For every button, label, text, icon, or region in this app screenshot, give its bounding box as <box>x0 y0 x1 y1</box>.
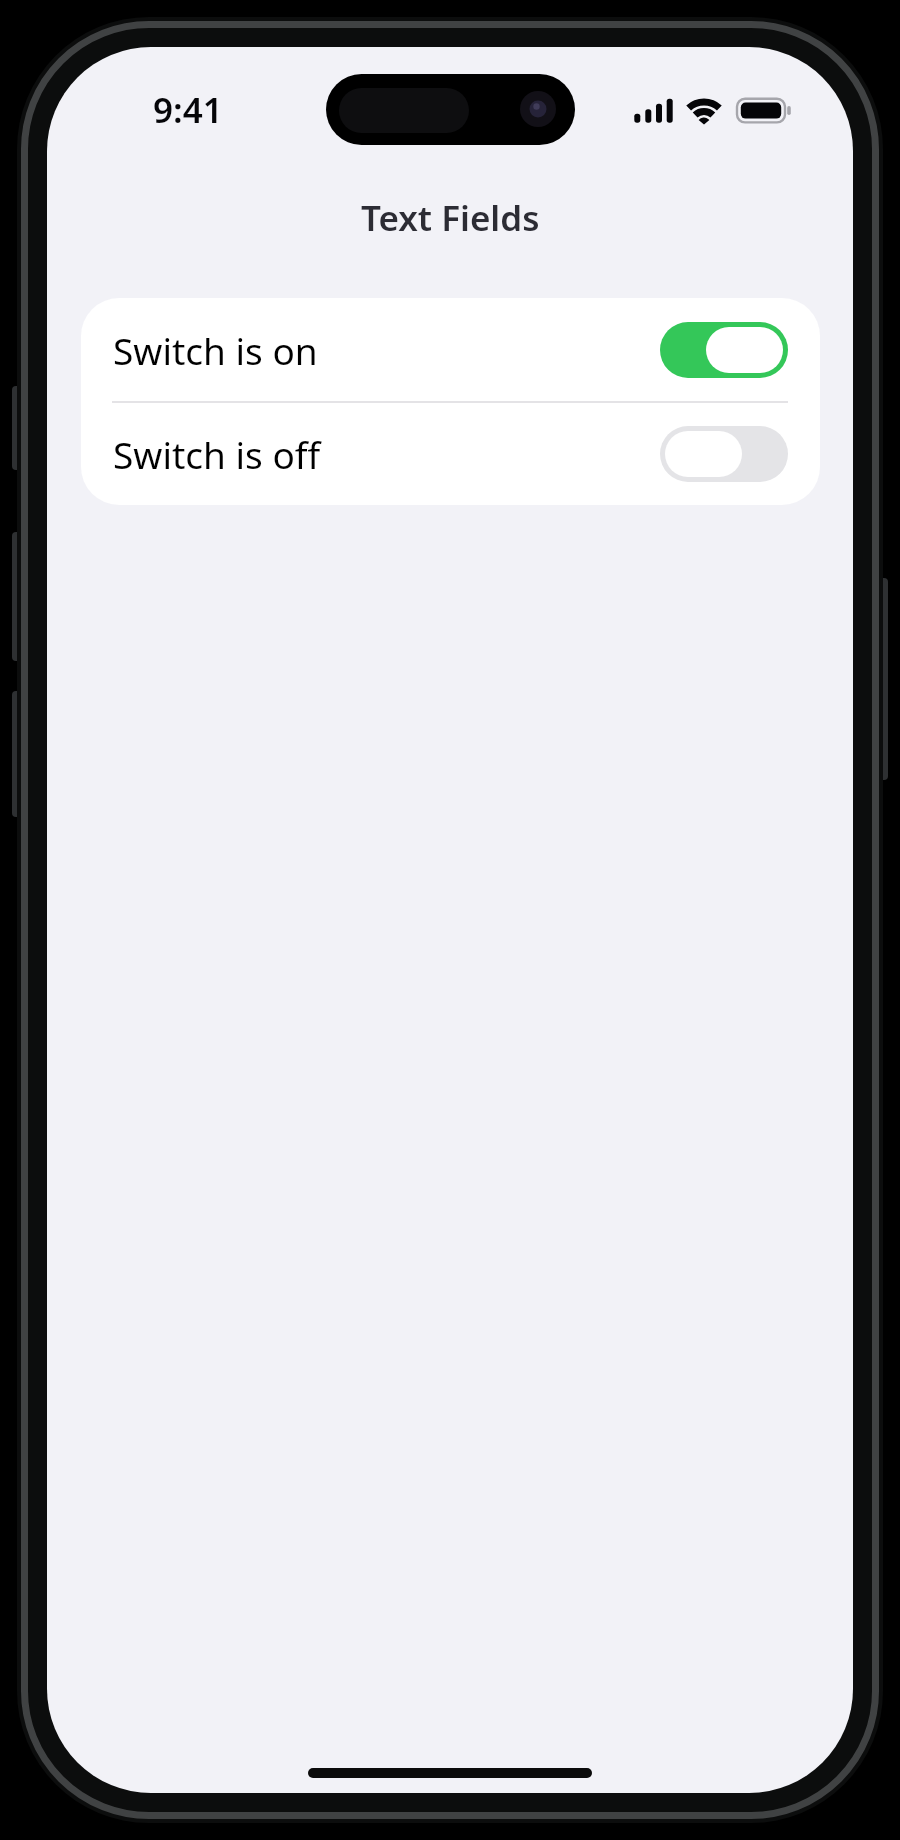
staticText: Switch is on <box>113 325 318 375</box>
staticText: Text Fields <box>361 194 540 242</box>
staticText: 9:41 <box>153 86 223 134</box>
staticText: Switch is off <box>113 429 321 479</box>
button[interactable] <box>660 426 788 482</box>
button[interactable] <box>660 322 788 378</box>
button[interactable]: Switch is off <box>81 403 820 505</box>
button[interactable]: Switch is on <box>81 298 820 401</box>
